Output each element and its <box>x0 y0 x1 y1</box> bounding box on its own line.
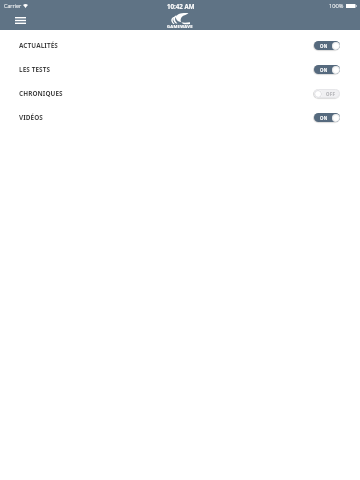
button[interactable]: ACTUALITÉS <box>0 33 360 57</box>
staticText: GAMEWAVE <box>167 24 193 30</box>
button[interactable]: Switch is on <box>313 64 340 75</box>
staticText: ON <box>320 115 328 121</box>
staticText: CHRONIQUES <box>19 89 63 98</box>
staticText: LES TESTS <box>19 65 51 74</box>
staticText: ON <box>320 43 328 49</box>
staticText: OFF <box>326 91 336 97</box>
button[interactable]: Switch is on <box>313 112 340 123</box>
staticText: ON <box>320 67 328 73</box>
staticText: ACTUALITÉS <box>19 41 58 50</box>
staticText: Carrier <box>4 2 22 9</box>
button[interactable]: Switch is on <box>313 40 340 51</box>
staticText: 10:42 AM <box>167 2 195 10</box>
button[interactable]: LES TESTS <box>0 57 360 81</box>
button[interactable]: VIDÉOS <box>0 105 360 129</box>
button[interactable]: CHRONIQUES <box>0 81 360 105</box>
button[interactable]: Switch is off <box>313 88 340 99</box>
staticText: 100% <box>329 2 344 10</box>
staticText: VIDÉOS <box>19 113 43 122</box>
button[interactable]: Open navigation menu <box>7 12 33 29</box>
